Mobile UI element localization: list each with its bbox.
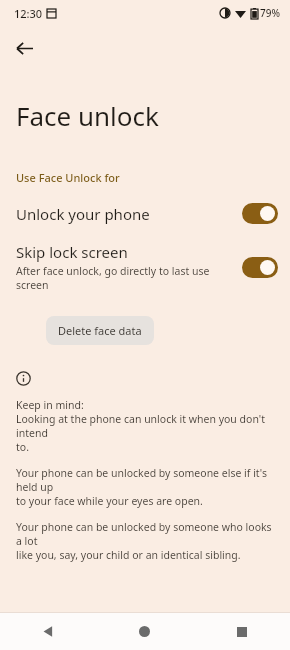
button[interactable]: Back <box>6 30 42 66</box>
staticText: Skip lock screen <box>16 242 128 262</box>
staticText: Face unlock <box>16 98 159 133</box>
staticText: Your phone can be unlocked by someone wh… <box>16 520 278 562</box>
staticText: Keep in mind: Looking at the phone can u… <box>16 398 278 454</box>
button[interactable]: Toggle <box>242 257 278 278</box>
button[interactable]: Back <box>0 613 96 650</box>
staticText: After face unlock, go directly to last u… <box>16 264 234 292</box>
staticText: 79% <box>260 6 280 20</box>
staticText: Your phone can be unlocked by someone el… <box>16 466 278 508</box>
button[interactable]: Toggle <box>242 203 278 224</box>
button[interactable]: Skip lock screen <box>0 240 290 294</box>
staticText: Use Face Unlock for <box>16 170 120 185</box>
button[interactable]: Recent apps <box>193 613 290 650</box>
staticText: Unlock your phone <box>16 204 150 224</box>
staticText: Delete face data <box>58 323 142 338</box>
button[interactable]: Unlock your phone <box>0 201 290 226</box>
staticText: 12:30 <box>14 6 43 21</box>
button[interactable]: Home <box>96 613 193 650</box>
button[interactable]: Delete face data <box>46 316 154 345</box>
